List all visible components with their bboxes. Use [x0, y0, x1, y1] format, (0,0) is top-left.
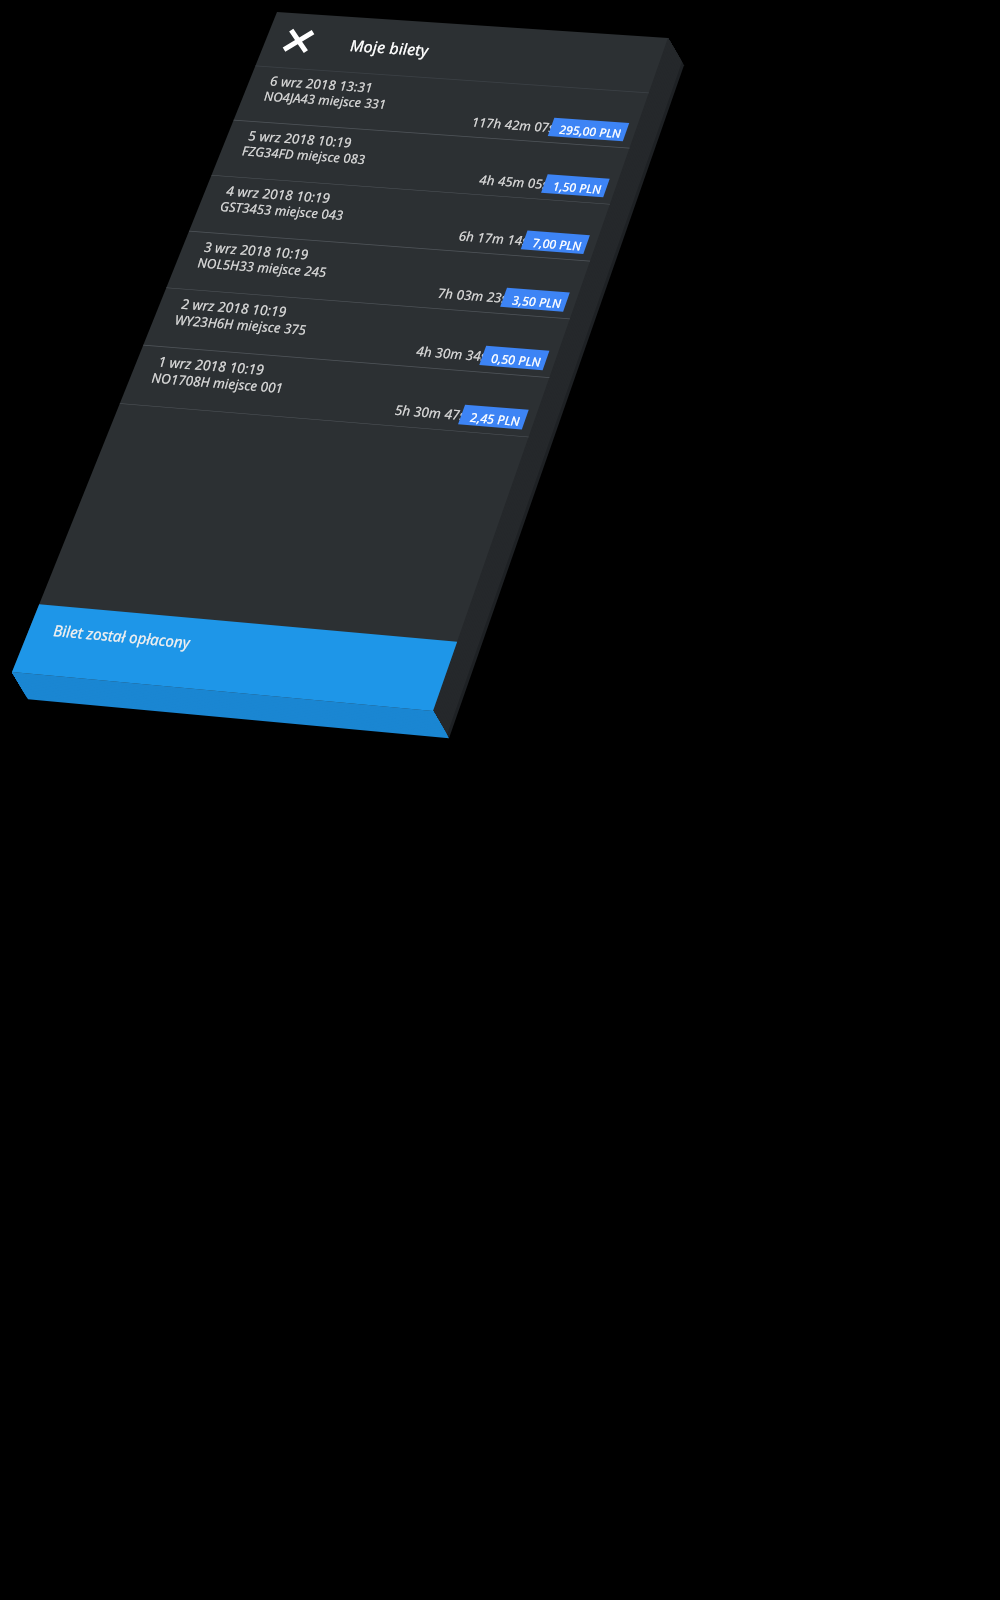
button[interactable]: Moje bilety	[0, 0, 1000, 1600]
